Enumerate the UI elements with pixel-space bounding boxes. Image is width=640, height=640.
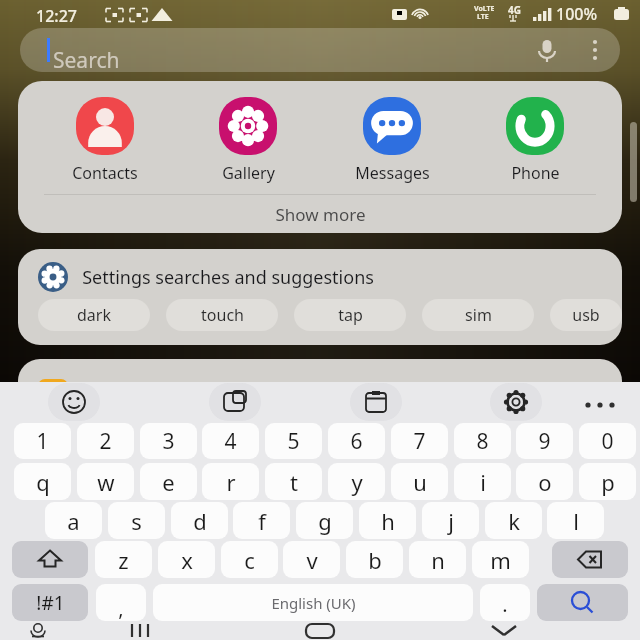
button[interactable]: 9 — [516, 423, 573, 459]
button[interactable]: g — [296, 502, 353, 539]
button[interactable]: Home — [296, 622, 344, 640]
button[interactable]: Messages — [336, 93, 448, 188]
button[interactable]: Clipboard — [350, 383, 402, 421]
button[interactable]: b — [346, 541, 403, 578]
button[interactable]: d — [171, 502, 228, 539]
button[interactable]: y — [328, 463, 385, 500]
button[interactable]: Gallery — [192, 93, 304, 188]
button[interactable]: Backspace — [552, 541, 628, 578]
staticText: m — [490, 545, 511, 575]
staticText: Gallery — [222, 162, 275, 184]
button[interactable]: t — [265, 463, 322, 500]
button[interactable]: English (UK) — [153, 584, 473, 621]
button[interactable]: More options — [578, 33, 612, 67]
staticText: v — [306, 545, 318, 575]
button[interactable]: c — [221, 541, 278, 578]
button[interactable]: Search — [20, 28, 620, 72]
button[interactable]: Stickers — [209, 383, 261, 421]
button[interactable]: 8 — [454, 423, 511, 459]
button[interactable]: touch — [166, 299, 278, 331]
staticText: e — [162, 467, 175, 497]
staticText: 8 — [476, 427, 489, 456]
button[interactable]: v — [283, 541, 340, 578]
staticText: Downloads — [82, 376, 187, 403]
staticText: 0 — [601, 427, 614, 456]
button[interactable]: r — [202, 463, 259, 500]
staticText: z — [118, 545, 129, 575]
button[interactable]: Hide keyboard — [480, 622, 528, 640]
staticText: l — [573, 506, 579, 536]
button[interactable]: x — [158, 541, 215, 578]
button[interactable]: usb — [550, 299, 622, 331]
button[interactable]: sim — [422, 299, 534, 331]
staticText: t — [290, 467, 298, 497]
staticText: dark — [77, 304, 111, 326]
staticText: Messages — [355, 162, 430, 184]
staticText: Search — [53, 46, 120, 72]
button[interactable]: Downloads — [18, 359, 622, 419]
button[interactable]: i — [454, 463, 511, 500]
button[interactable]: w — [77, 463, 134, 500]
button[interactable]: . — [480, 584, 530, 621]
button[interactable]: u — [391, 463, 448, 500]
button[interactable]: h — [359, 502, 416, 539]
staticText: h — [381, 506, 395, 536]
button[interactable]: Voice input — [14, 622, 62, 640]
button[interactable]: 3 — [140, 423, 197, 459]
button[interactable]: o — [516, 463, 573, 500]
staticText: u — [413, 467, 427, 497]
staticText: d — [193, 506, 207, 536]
button[interactable]: 6 — [328, 423, 385, 459]
staticText: , — [118, 595, 124, 621]
button[interactable]: Settings searches and suggestions — [38, 262, 622, 292]
button[interactable]: z — [95, 541, 152, 578]
button[interactable]: l — [547, 502, 604, 539]
staticText: s — [131, 506, 142, 536]
staticText: a — [67, 506, 80, 536]
button[interactable]: More keyboard options — [578, 383, 622, 427]
button[interactable]: 0 — [579, 423, 636, 459]
staticText: x — [181, 545, 193, 575]
button[interactable]: Emoji — [48, 383, 100, 421]
button[interactable]: Show more — [18, 195, 622, 233]
button[interactable]: Keyboard settings — [490, 383, 542, 421]
button[interactable]: e — [140, 463, 197, 500]
button[interactable]: s — [108, 502, 165, 539]
staticText: tap — [338, 304, 363, 326]
staticText: VoLTE — [474, 4, 495, 14]
button[interactable]: Search — [537, 584, 628, 621]
staticText: sim — [465, 304, 492, 326]
button[interactable]: Phone — [479, 93, 591, 188]
button[interactable]: Recents — [118, 622, 166, 640]
staticText: f — [258, 506, 266, 536]
button[interactable]: 1 — [14, 423, 71, 459]
button[interactable]: 4 — [202, 423, 259, 459]
staticText: p — [601, 467, 615, 497]
button[interactable]: f — [233, 502, 290, 539]
staticText: 1 — [36, 427, 49, 456]
button[interactable]: 2 — [77, 423, 134, 459]
button[interactable]: tap — [294, 299, 406, 331]
button[interactable]: dark — [38, 299, 150, 331]
button[interactable]: 5 — [265, 423, 322, 459]
button[interactable]: Contacts — [49, 93, 161, 188]
button[interactable]: q — [14, 463, 71, 500]
staticText: 2 — [99, 427, 112, 456]
button[interactable]: Shift — [12, 541, 88, 578]
staticText: i — [480, 467, 486, 497]
button[interactable]: !#1 — [12, 584, 88, 621]
button[interactable]: m — [472, 541, 529, 578]
button[interactable]: 7 — [391, 423, 448, 459]
button[interactable]: a — [45, 502, 102, 539]
button[interactable]: j — [422, 502, 479, 539]
staticText: 3 — [162, 427, 175, 456]
button[interactable]: n — [409, 541, 466, 578]
staticText: b — [368, 545, 382, 575]
button[interactable]: Voice search — [530, 33, 564, 67]
staticText: 5 — [287, 427, 300, 456]
button[interactable]: k — [485, 502, 542, 539]
staticText: 4G — [508, 3, 521, 17]
button[interactable]: , — [96, 584, 146, 621]
staticText: Show more — [275, 203, 366, 226]
button[interactable]: p — [579, 463, 636, 500]
